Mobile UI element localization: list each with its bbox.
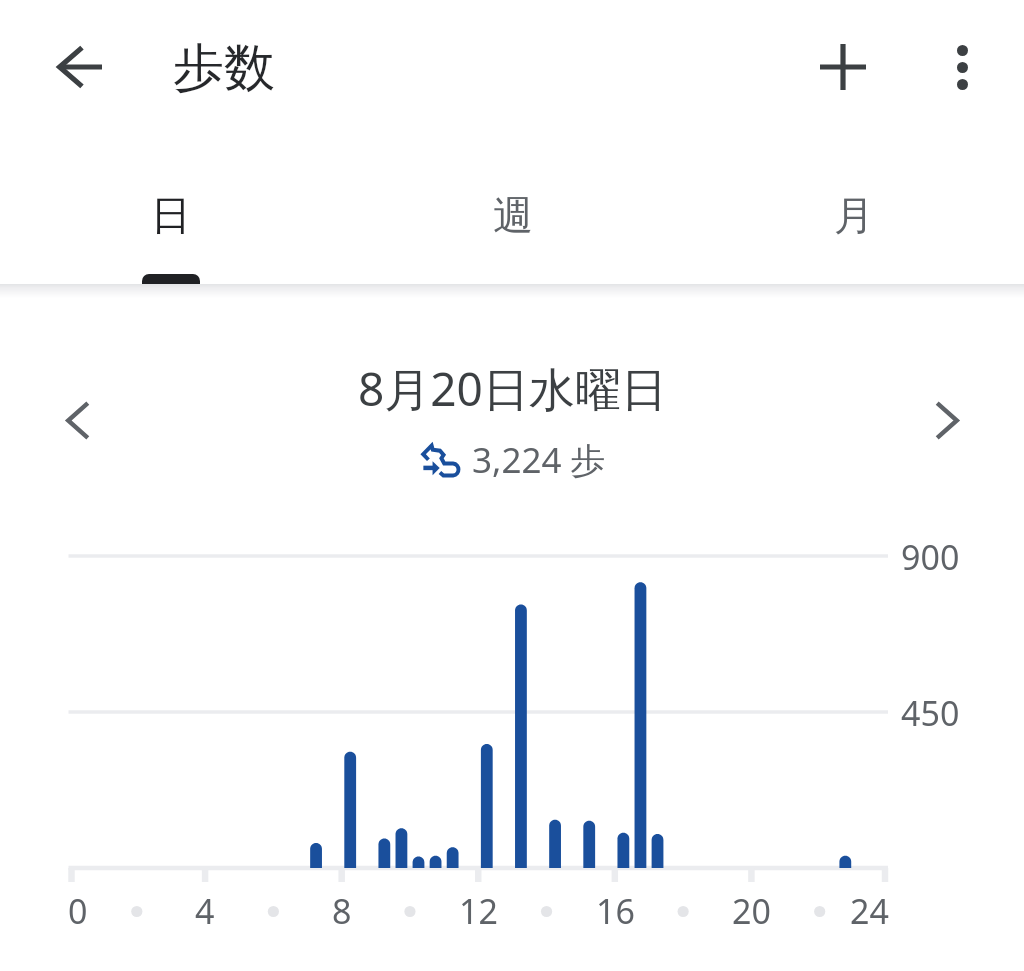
staticText: 3,224 歩 [472,436,606,484]
staticText: 24 [850,888,889,934]
staticText: 0 [68,888,88,934]
staticText: 8 [332,888,352,934]
staticText: 16 [596,888,635,934]
staticText: 日 [151,190,191,240]
staticText: 20 [732,888,771,934]
staticText: 450 [901,690,960,736]
button[interactable]: Previous day [38,380,118,460]
button[interactable]: 月 [683,140,1024,287]
staticText: 週 [493,190,533,240]
button[interactable]: 日 [0,140,342,287]
button[interactable]: Next day [907,380,987,460]
button[interactable]: More options [918,23,1006,111]
staticText: 歩数 [173,36,275,100]
staticText: 月 [834,190,874,240]
button[interactable]: Back [35,23,124,111]
staticText: 12 [459,888,498,934]
button[interactable]: Add [799,23,887,111]
button[interactable]: 週 [342,140,683,287]
staticText: 8月20日水曜日 [358,357,667,420]
staticText: 900 [901,534,960,580]
staticText: 4 [195,888,215,934]
